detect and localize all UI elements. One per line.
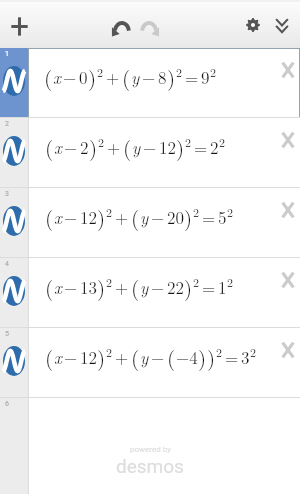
- button[interactable]: Delete expression 5: [272, 336, 300, 364]
- staticText: ): [176, 132, 185, 162]
- staticText: ): [89, 132, 98, 162]
- staticText: (: [131, 202, 140, 232]
- staticText: 2: [219, 133, 226, 150]
- staticText: 12: [159, 135, 176, 159]
- staticText: y: [140, 345, 149, 369]
- staticText: (: [44, 62, 53, 92]
- staticText: −: [64, 345, 78, 369]
- staticText: 2: [193, 203, 200, 220]
- staticText: ): [88, 62, 97, 92]
- button[interactable]: Undo: [104, 8, 138, 42]
- staticText: +: [106, 65, 120, 89]
- staticText: 12: [80, 205, 97, 229]
- staticText: desmos: [116, 455, 184, 477]
- staticText: −: [151, 205, 165, 229]
- staticText: (: [45, 342, 54, 372]
- button[interactable]: 1: [0, 48, 300, 117]
- staticText: x: [54, 135, 62, 159]
- staticText: =: [202, 205, 216, 229]
- staticText: (: [131, 272, 140, 302]
- button[interactable]: 3: [0, 188, 300, 257]
- staticText: 2: [250, 343, 257, 360]
- button[interactable]: Add expression: [2, 9, 36, 43]
- staticText: x: [53, 65, 61, 89]
- staticText: ): [97, 342, 106, 372]
- staticText: 3: [5, 190, 9, 198]
- staticText: 2: [5, 120, 9, 128]
- button[interactable]: 4: [0, 258, 300, 327]
- staticText: −: [151, 275, 165, 299]
- button[interactable]: Redo: [132, 8, 166, 42]
- staticText: =: [225, 345, 239, 369]
- staticText: 5: [218, 205, 227, 229]
- staticText: 5: [5, 330, 9, 338]
- staticText: 2: [227, 203, 234, 220]
- staticText: (: [131, 342, 140, 372]
- staticText: 2: [80, 135, 89, 159]
- button[interactable]: Delete expression 1: [272, 56, 300, 84]
- staticText: =: [194, 135, 208, 159]
- staticText: x: [54, 275, 62, 299]
- staticText: 2: [227, 273, 234, 290]
- staticText: ): [184, 272, 193, 302]
- staticText: ): [207, 342, 216, 372]
- staticText: 2: [106, 203, 113, 220]
- staticText: 2: [193, 273, 200, 290]
- staticText: −: [151, 345, 165, 369]
- staticText: 9: [201, 65, 210, 89]
- staticText: −: [64, 135, 78, 159]
- staticText: 4: [5, 260, 9, 268]
- staticText: −: [142, 65, 156, 89]
- button[interactable]: Delete expression 3: [272, 196, 300, 224]
- staticText: y: [132, 135, 141, 159]
- staticText: ): [97, 202, 106, 232]
- staticText: 2: [210, 63, 217, 80]
- button[interactable]: Collapse keypad: [265, 9, 299, 43]
- staticText: 20: [167, 205, 184, 229]
- staticText: 6: [5, 400, 9, 408]
- staticText: 2: [176, 63, 183, 80]
- button[interactable]: Delete expression 4: [272, 266, 300, 294]
- button[interactable]: 5: [0, 328, 300, 397]
- staticText: x: [54, 345, 62, 369]
- staticText: −: [64, 275, 78, 299]
- staticText: ): [167, 62, 176, 92]
- staticText: 2: [185, 133, 192, 150]
- staticText: 1: [5, 50, 9, 58]
- staticText: −: [143, 135, 157, 159]
- staticText: −: [64, 205, 78, 229]
- staticText: ): [184, 202, 193, 232]
- staticText: 2: [98, 133, 105, 150]
- staticText: 2: [97, 63, 104, 80]
- staticText: y: [140, 275, 149, 299]
- staticText: +: [115, 275, 129, 299]
- staticText: ): [97, 272, 106, 302]
- staticText: 2: [106, 343, 113, 360]
- staticText: +: [115, 345, 129, 369]
- staticText: 0: [79, 65, 88, 89]
- staticText: 2: [106, 273, 113, 290]
- button[interactable]: Delete expression 2: [272, 126, 300, 154]
- staticText: (: [167, 342, 176, 372]
- button[interactable]: 2: [0, 118, 300, 187]
- staticText: +: [115, 205, 129, 229]
- staticText: 1: [218, 275, 227, 299]
- staticText: 2: [210, 135, 219, 159]
- staticText: y: [140, 205, 149, 229]
- staticText: 3: [241, 345, 250, 369]
- staticText: (: [45, 272, 54, 302]
- staticText: 13: [80, 275, 97, 299]
- staticText: (: [123, 132, 132, 162]
- staticText: x: [54, 205, 62, 229]
- staticText: =: [185, 65, 199, 89]
- staticText: y: [131, 65, 140, 89]
- staticText: ): [198, 342, 207, 372]
- staticText: −4: [176, 345, 198, 369]
- staticText: =: [202, 275, 216, 299]
- staticText: (: [45, 132, 54, 162]
- staticText: +: [107, 135, 121, 159]
- staticText: 2: [216, 343, 223, 360]
- staticText: 22: [167, 275, 184, 299]
- button[interactable]: Settings: [236, 8, 270, 42]
- staticText: (: [122, 62, 131, 92]
